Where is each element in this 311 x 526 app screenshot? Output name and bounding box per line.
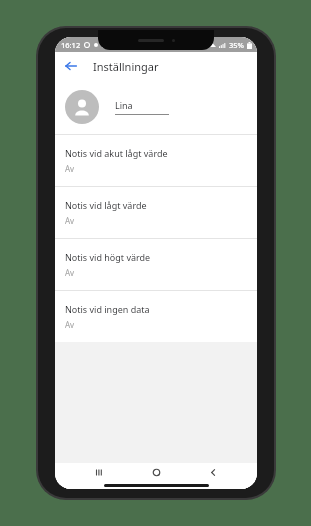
- button[interactable]: Notis vid ingen data: [55, 291, 257, 342]
- staticText: Av: [65, 215, 75, 226]
- staticText: Lina: [115, 99, 133, 111]
- button[interactable]: Notis vid högt värde: [55, 239, 257, 290]
- staticText: Inställningar: [93, 59, 159, 74]
- staticText: Av: [65, 163, 75, 174]
- staticText: Notis vid högt värde: [65, 251, 151, 263]
- staticText: 35%: [229, 40, 244, 50]
- staticText: Av: [65, 319, 75, 330]
- staticText: 16:12: [61, 40, 81, 50]
- staticText: Av: [65, 267, 75, 278]
- staticText: Notis vid ingen data: [65, 303, 150, 315]
- staticText: Notis vid lågt värde: [65, 199, 147, 211]
- button[interactable]: Notis vid lågt värde: [55, 187, 257, 238]
- button[interactable]: Senaste apparna: [86, 463, 112, 481]
- button[interactable]: Tillbaka: [200, 463, 226, 481]
- button[interactable]: Hem: [143, 463, 169, 481]
- staticText: Notis vid akut lågt värde: [65, 147, 168, 159]
- button[interactable]: Lina: [55, 80, 257, 134]
- button[interactable]: Tillbaka: [59, 54, 83, 78]
- button[interactable]: Notis vid akut lågt värde: [55, 135, 257, 186]
